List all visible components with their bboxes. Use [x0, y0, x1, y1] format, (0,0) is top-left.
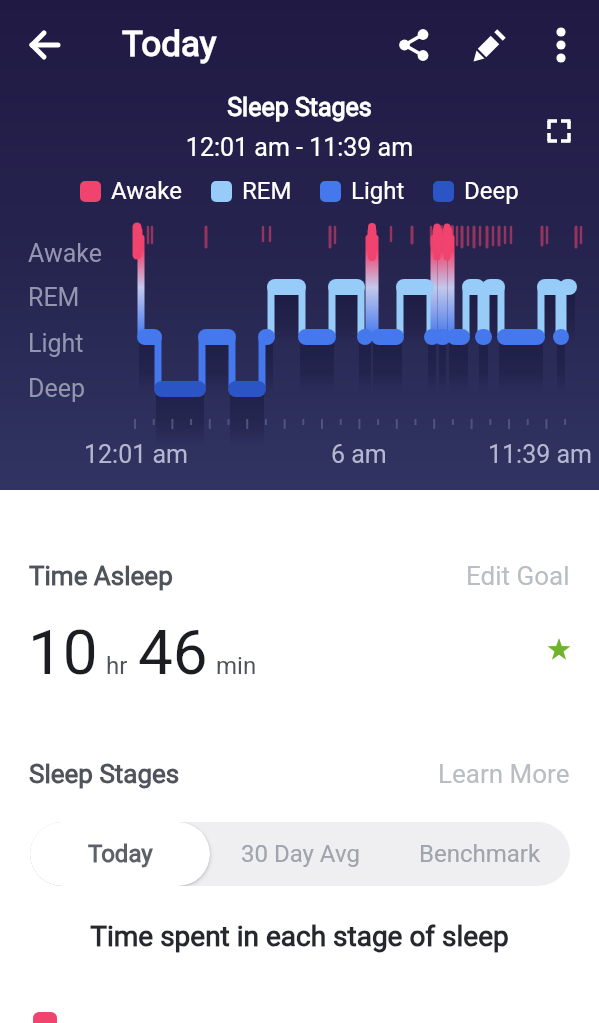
button[interactable]: [471, 26, 509, 64]
staticText: 10: [28, 616, 98, 689]
staticText: min: [216, 652, 257, 680]
button[interactable]: 30 Day Avg: [210, 822, 390, 886]
button[interactable]: [395, 26, 433, 64]
staticText: 12:01 am - 11:39 am: [0, 133, 599, 162]
staticText: 11:39 am: [488, 440, 592, 469]
staticText: 30 Day Avg: [241, 840, 360, 868]
button[interactable]: Today: [30, 822, 210, 886]
button[interactable]: Learn More: [438, 759, 570, 789]
staticText: 46: [138, 616, 208, 689]
button[interactable]: Edit Goal: [466, 561, 570, 591]
staticText: hr: [106, 652, 128, 680]
button[interactable]: [542, 26, 580, 64]
staticText: Light: [28, 329, 84, 358]
staticText: Sleep Stages: [0, 93, 599, 122]
staticText: 12:01 am: [84, 440, 188, 469]
staticText: REM: [242, 177, 292, 205]
staticText: Awake: [111, 177, 183, 205]
staticText: Time spent in each stage of sleep: [0, 920, 599, 953]
button[interactable]: Benchmark: [390, 822, 570, 886]
button[interactable]: [24, 24, 66, 66]
staticText: Time Asleep: [29, 561, 173, 591]
staticText: Deep: [464, 177, 519, 205]
staticText: 6 am: [331, 440, 387, 469]
staticText: Benchmark: [419, 840, 541, 868]
staticText: Sleep Stages: [29, 759, 180, 789]
staticText: Deep: [28, 374, 85, 403]
staticText: Today: [88, 840, 153, 868]
staticText: REM: [28, 283, 80, 312]
staticText: Light: [351, 177, 405, 205]
staticText: Awake: [28, 239, 102, 268]
staticText: Today: [122, 24, 217, 65]
button[interactable]: [540, 112, 578, 150]
